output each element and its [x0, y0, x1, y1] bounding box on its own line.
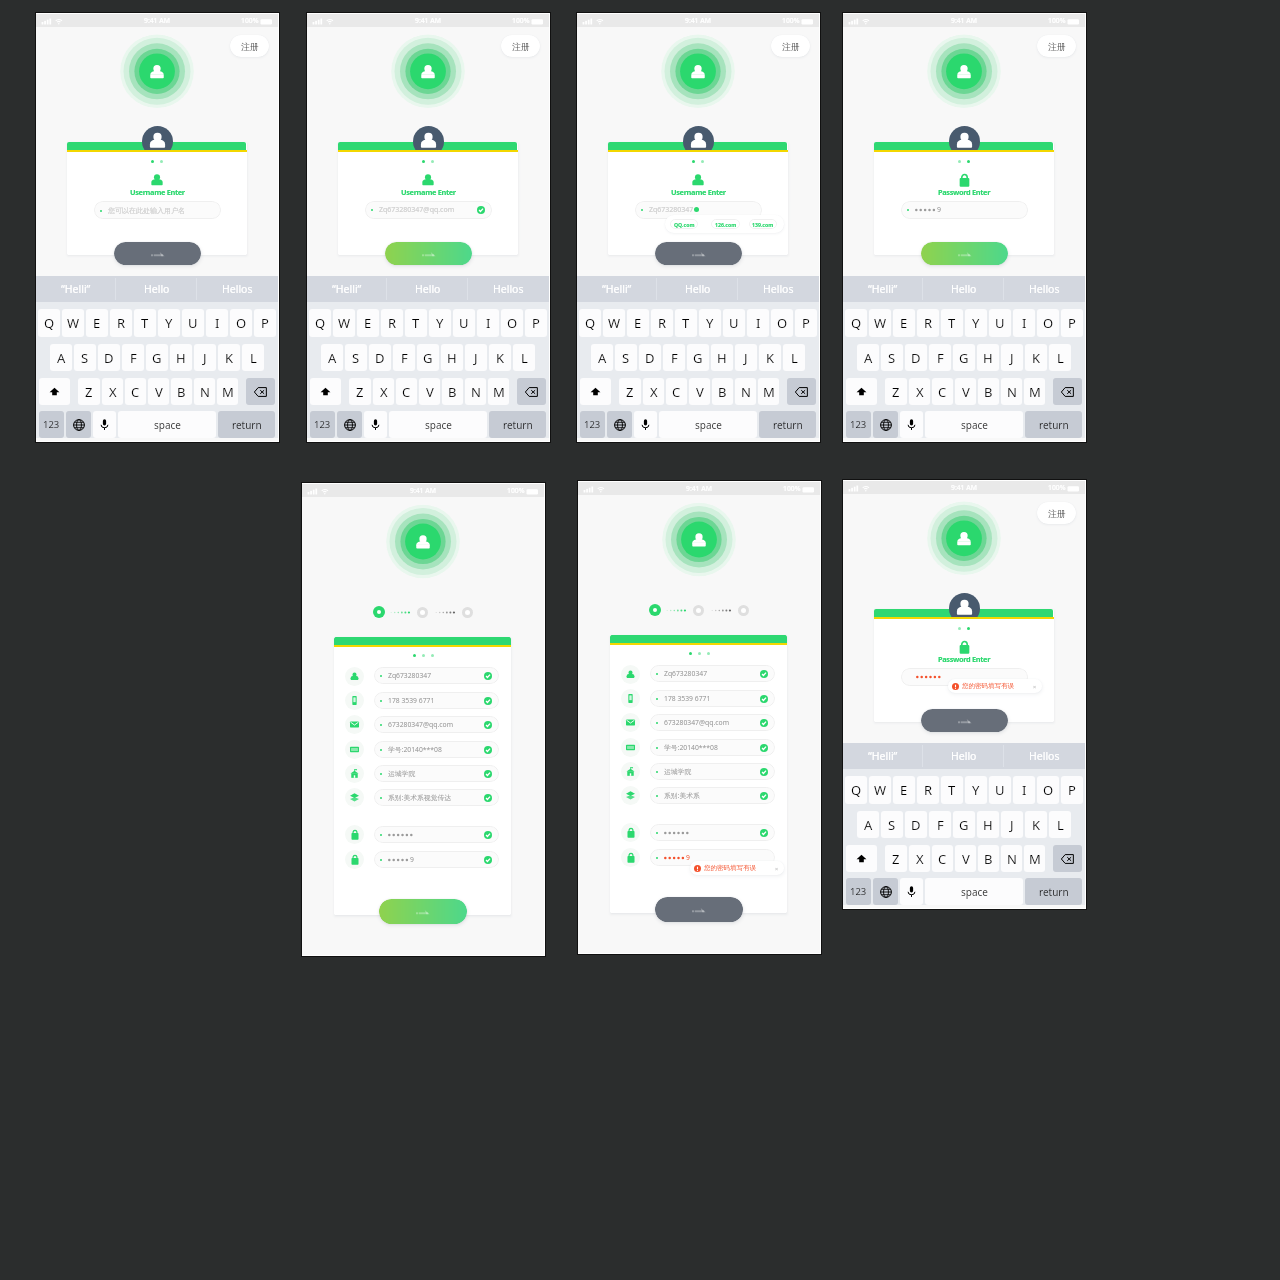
button[interactable]: W — [603, 309, 625, 337]
button[interactable]: U — [723, 309, 745, 337]
button[interactable]: return — [1025, 411, 1082, 438]
button[interactable]: T — [941, 309, 963, 337]
button[interactable] — [901, 668, 1028, 686]
button[interactable]: 系别:美术系 — [650, 787, 775, 804]
button[interactable]: 9 — [901, 201, 1028, 219]
button[interactable]: Hellos — [1004, 276, 1085, 302]
button[interactable]: Zq673280347 — [635, 201, 762, 219]
button[interactable]: 您的密码填写有误 — [690, 861, 784, 875]
button[interactable]: T — [941, 776, 963, 804]
button[interactable]: 9 — [374, 851, 499, 868]
button[interactable]: L — [242, 344, 264, 371]
button[interactable]: 注册 — [1037, 35, 1076, 57]
button[interactable]: Z — [885, 845, 907, 872]
button[interactable]: “Helli” — [843, 743, 923, 769]
button[interactable]: R — [917, 309, 939, 337]
button[interactable]: Q — [579, 309, 601, 337]
button[interactable]: 运城学院 — [374, 765, 499, 782]
button[interactable]: C — [125, 378, 146, 405]
button[interactable]: I — [477, 309, 499, 337]
button[interactable]: C — [932, 378, 953, 405]
button[interactable]: Language — [337, 411, 362, 438]
button[interactable]: A — [857, 344, 879, 371]
button[interactable]: Shift — [310, 378, 341, 405]
button[interactable]: 注册 — [771, 35, 810, 57]
button[interactable]: H — [441, 344, 463, 371]
button[interactable]: Next — [921, 242, 1008, 265]
button[interactable]: I — [747, 309, 769, 337]
button[interactable]: B — [442, 378, 463, 405]
button[interactable]: Z — [619, 378, 641, 405]
button[interactable]: “Helli” — [36, 276, 116, 302]
button[interactable]: S — [881, 811, 903, 838]
button[interactable]: Y — [699, 309, 721, 337]
button[interactable]: R — [110, 309, 132, 337]
button[interactable]: L — [1049, 811, 1071, 838]
button[interactable]: W — [62, 309, 84, 337]
button[interactable]: 您可以在此处输入用户名 — [94, 201, 221, 219]
button[interactable]: G — [953, 811, 975, 838]
button[interactable]: R — [917, 776, 939, 804]
button[interactable]: F — [663, 344, 685, 371]
button[interactable]: B — [978, 845, 999, 872]
button[interactable]: 注册 — [501, 35, 540, 57]
button[interactable]: Backspace — [1053, 378, 1082, 405]
button[interactable]: 学号:20140***08 — [650, 739, 775, 756]
button[interactable]: 126.com — [711, 219, 740, 229]
button[interactable]: G — [146, 344, 168, 371]
button[interactable]: L — [1049, 344, 1071, 371]
button[interactable]: Language — [873, 878, 898, 905]
button[interactable]: R — [381, 309, 403, 337]
button[interactable]: P — [525, 309, 547, 337]
button[interactable]: space — [118, 411, 216, 438]
button[interactable]: Hello — [657, 276, 738, 302]
button[interactable]: S — [345, 344, 367, 371]
button[interactable]: Backspace — [517, 378, 546, 405]
button[interactable]: U — [453, 309, 475, 337]
button[interactable]: E — [893, 776, 915, 804]
button[interactable]: O — [1037, 776, 1059, 804]
button[interactable]: Shift — [846, 378, 877, 405]
button[interactable]: “Helli” — [307, 276, 387, 302]
button[interactable]: space — [389, 411, 487, 438]
button[interactable]: K — [489, 344, 511, 371]
button[interactable]: H — [170, 344, 192, 371]
button[interactable]: T — [405, 309, 427, 337]
button[interactable] — [650, 824, 775, 841]
button[interactable]: E — [357, 309, 379, 337]
button[interactable]: W — [869, 776, 891, 804]
button[interactable]: O — [501, 309, 523, 337]
button[interactable]: Z — [78, 378, 100, 405]
button[interactable]: Backspace — [1053, 845, 1082, 872]
button[interactable]: Hello — [923, 743, 1004, 769]
button[interactable]: “Helli” — [577, 276, 657, 302]
button[interactable]: X — [373, 378, 394, 405]
button[interactable] — [374, 826, 499, 843]
button[interactable]: 9 — [650, 849, 775, 866]
button[interactable]: E — [627, 309, 649, 337]
button[interactable]: E — [893, 309, 915, 337]
button[interactable]: C — [666, 378, 687, 405]
button[interactable]: Dictate — [634, 411, 657, 438]
button[interactable]: D — [98, 344, 120, 371]
button[interactable]: B — [712, 378, 733, 405]
button[interactable]: K — [759, 344, 781, 371]
button[interactable]: E — [86, 309, 108, 337]
button[interactable]: Backspace — [787, 378, 816, 405]
button[interactable]: Dismiss — [773, 865, 780, 872]
button[interactable]: Hellos — [738, 276, 819, 302]
button[interactable]: 您的密码填写有误 — [948, 679, 1042, 693]
button[interactable]: Shift — [846, 845, 877, 872]
button[interactable]: Shift — [580, 378, 611, 405]
button[interactable]: U — [989, 776, 1011, 804]
button[interactable]: O — [1037, 309, 1059, 337]
button[interactable]: O — [771, 309, 793, 337]
button[interactable]: W — [333, 309, 355, 337]
button[interactable]: X — [102, 378, 123, 405]
button[interactable]: J — [1001, 344, 1023, 371]
button[interactable]: H — [711, 344, 733, 371]
button[interactable]: Next — [379, 899, 467, 924]
button[interactable]: Q — [845, 309, 867, 337]
button[interactable]: J — [465, 344, 487, 371]
button[interactable]: D — [369, 344, 391, 371]
